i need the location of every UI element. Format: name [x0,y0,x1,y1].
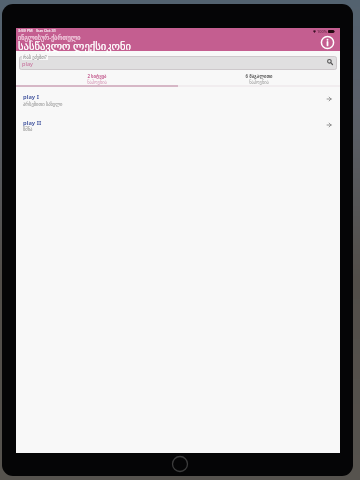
staticText: play II [23,119,42,127]
staticText: ზმნა [23,127,33,132]
staticText: 6 მაგალითი [245,73,273,79]
staticText: ნაპოვნია [249,80,269,85]
staticText: 100% [317,29,327,34]
staticText: play I [23,93,39,101]
staticText: ინგლისურ-ქართული [18,33,81,41]
staticText: play [22,60,33,68]
button[interactable]: 6 მაგალითი [178,72,340,85]
staticText: სასწავლო ლექსიკონი [18,39,131,53]
staticText: Sun Oct 31 [36,28,56,33]
button[interactable]: play II [16,116,340,142]
button[interactable] [19,56,337,70]
staticText: რას ეძებთ? [23,54,47,60]
staticText: ნაპოვნია [87,80,107,85]
staticText: 3:59 PM [18,28,33,33]
button[interactable]: Search [327,59,333,65]
button[interactable]: play I [16,90,340,116]
button[interactable]: Info [320,35,335,50]
button[interactable]: 2 სიტყვა [16,72,178,85]
staticText: არსებითი სახელი [23,101,63,107]
staticText: 2 სიტყვა [87,73,107,79]
